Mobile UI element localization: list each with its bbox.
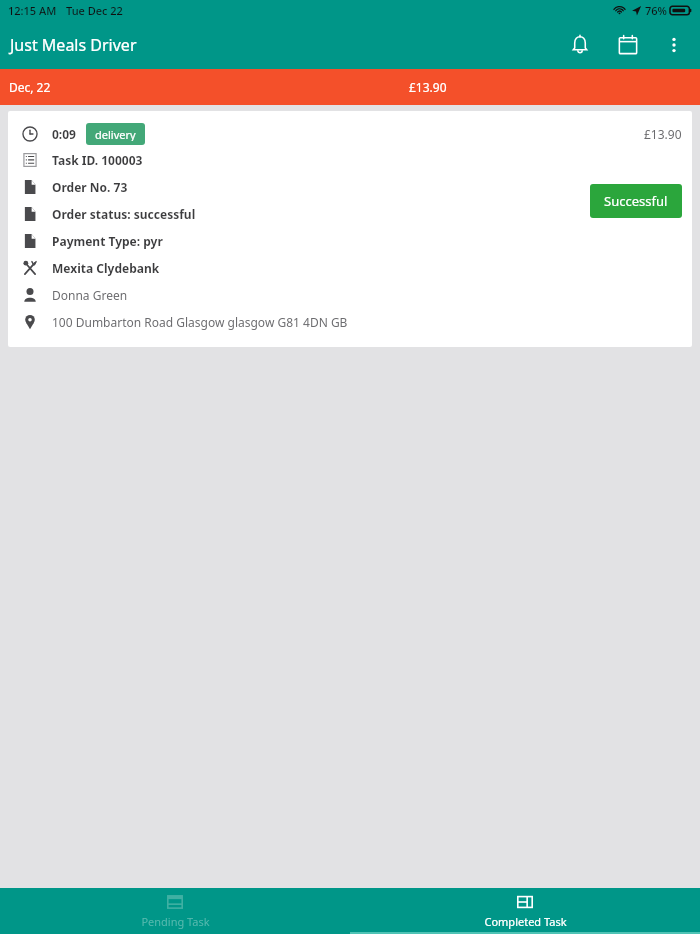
staticText: delivery bbox=[95, 127, 136, 141]
button[interactable]: 0:09 bbox=[8, 111, 692, 347]
button[interactable]: More options bbox=[652, 23, 696, 67]
button[interactable]: Calendar bbox=[604, 21, 652, 69]
staticText: Mexita Clydebank bbox=[52, 260, 160, 276]
staticText: £13.90 bbox=[644, 126, 682, 142]
button[interactable]: Pending Task bbox=[0, 888, 350, 934]
staticText: Payment Type: pyr bbox=[52, 233, 163, 249]
staticText: Order status: successful bbox=[52, 206, 196, 222]
button[interactable]: Completed Task bbox=[350, 888, 700, 934]
button[interactable]: delivery bbox=[86, 123, 145, 145]
button[interactable]: Successful bbox=[590, 184, 682, 218]
staticText: £13.90 bbox=[409, 79, 447, 95]
staticText: Donna Green bbox=[52, 287, 128, 303]
staticText: 100 Dumbarton Road Glasgow glasgow G81 4… bbox=[52, 314, 348, 330]
staticText: Completed Task bbox=[484, 914, 567, 929]
staticText: 12:15 AM bbox=[8, 3, 57, 18]
staticText: Tue Dec 22 bbox=[66, 3, 123, 18]
staticText: Just Meals Driver bbox=[10, 34, 137, 56]
staticText: Task ID. 100003 bbox=[52, 152, 143, 168]
staticText: Successful bbox=[604, 192, 668, 210]
staticText: Pending Task bbox=[141, 914, 210, 929]
staticText: 76% bbox=[645, 3, 667, 18]
staticText: Order No. 73 bbox=[52, 179, 128, 195]
button[interactable]: Notifications bbox=[556, 21, 604, 69]
staticText: 0:09 bbox=[52, 126, 76, 142]
staticText: Dec, 22 bbox=[9, 79, 51, 95]
